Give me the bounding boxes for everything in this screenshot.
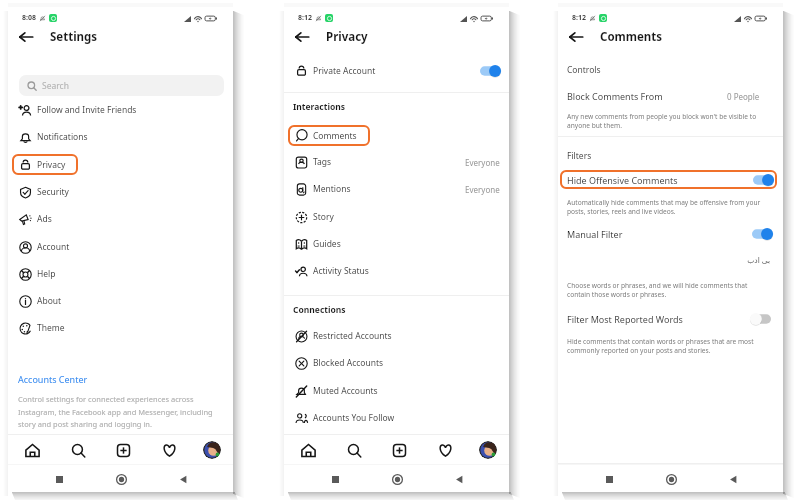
- staticText: Filter Most Reported Words: [567, 313, 683, 325]
- staticText: Account: [37, 241, 70, 253]
- staticText: Block Comments From: [567, 90, 663, 102]
- staticText: Private Account: [313, 65, 376, 77]
- button[interactable]: Create: [112, 439, 134, 461]
- button[interactable]: Blocked Accounts: [284, 352, 509, 374]
- button[interactable]: Search: [19, 75, 224, 96]
- button[interactable]: Account: [8, 236, 233, 258]
- button[interactable]: Hide Offensive Comments: [560, 170, 777, 189]
- staticText: Ads: [37, 213, 52, 225]
- button[interactable]: Back: [428, 468, 490, 490]
- button[interactable]: Privacy: [12, 154, 78, 175]
- staticText: Connections: [293, 304, 346, 316]
- staticText: Privacy: [326, 29, 368, 45]
- staticText: Search: [42, 80, 69, 92]
- button[interactable]: Home: [640, 468, 702, 490]
- staticText: Filters: [567, 150, 592, 162]
- staticText: Accounts You Follow: [313, 412, 395, 424]
- button[interactable]: Toggle: [753, 174, 772, 186]
- button[interactable]: Muted Accounts: [284, 380, 509, 402]
- staticText: Everyone: [465, 184, 500, 195]
- button[interactable]: Follow and Invite Friends: [8, 99, 233, 121]
- button[interactable]: Mentions: [284, 178, 509, 200]
- staticText: بی ادب: [558, 255, 770, 265]
- staticText: 8:12: [572, 13, 586, 23]
- button[interactable]: Block Comments From: [558, 87, 783, 105]
- staticText: Choose words or phrases, and we will hid…: [567, 281, 772, 299]
- staticText: 8:08: [22, 13, 36, 23]
- staticText: Muted Accounts: [313, 385, 378, 397]
- staticText: Settings: [50, 29, 98, 45]
- staticText: About: [37, 295, 62, 307]
- staticText: Everyone: [465, 157, 500, 168]
- staticText: Comments: [313, 130, 357, 142]
- button[interactable]: Accounts You Follow: [284, 407, 509, 429]
- button[interactable]: Toggle: [480, 65, 499, 77]
- button[interactable]: Help: [8, 263, 233, 285]
- button[interactable]: Home: [21, 439, 43, 461]
- staticText: 0 People: [727, 91, 760, 102]
- button[interactable]: Create: [388, 439, 410, 461]
- staticText: Notifications: [37, 131, 88, 143]
- staticText: Blocked Accounts: [313, 357, 384, 369]
- button[interactable]: Activity: [158, 439, 180, 461]
- button[interactable]: Recents: [304, 468, 366, 490]
- staticText: Manual Filter: [567, 228, 623, 240]
- button[interactable]: Search: [67, 439, 89, 461]
- staticText: Privacy: [37, 159, 66, 171]
- staticText: 8:12: [298, 13, 312, 23]
- staticText: Restricted Accounts: [313, 330, 392, 342]
- button[interactable]: Guides: [284, 233, 509, 255]
- button[interactable]: Recents: [578, 468, 640, 490]
- button[interactable]: Activity: [434, 439, 456, 461]
- button[interactable]: Profile: [479, 441, 497, 459]
- button[interactable]: Ads: [8, 208, 233, 230]
- button[interactable]: Back: [565, 26, 587, 48]
- button[interactable]: Activity Status: [284, 260, 509, 282]
- staticText: Guides: [313, 238, 341, 250]
- button[interactable]: Private Account: [284, 57, 509, 84]
- staticText: Controls: [567, 64, 601, 76]
- button[interactable]: Notifications: [8, 126, 233, 148]
- staticText: Interactions: [293, 101, 346, 113]
- staticText: Mentions: [313, 183, 351, 195]
- button[interactable]: Profile: [203, 441, 221, 459]
- button[interactable]: Story: [284, 206, 509, 228]
- button[interactable]: Tags: [284, 151, 509, 173]
- button[interactable]: Home: [90, 468, 152, 490]
- button[interactable]: Toggle: [752, 228, 771, 240]
- button[interactable]: Back: [152, 468, 214, 490]
- staticText: Help: [37, 268, 56, 280]
- button[interactable]: Theme: [8, 317, 233, 339]
- button[interactable]: Search: [343, 439, 365, 461]
- staticText: Hide Offensive Comments: [567, 174, 678, 186]
- button[interactable]: Security: [8, 181, 233, 203]
- staticText: Control settings for connected experienc…: [18, 394, 223, 429]
- button[interactable]: Recents: [28, 468, 90, 490]
- staticText: Comments: [600, 29, 663, 45]
- staticText: Any new comments from people you block w…: [567, 112, 767, 130]
- staticText: Follow and Invite Friends: [37, 104, 137, 116]
- staticText: Activity Status: [313, 265, 369, 277]
- button[interactable]: Home: [366, 468, 428, 490]
- button[interactable]: Back: [15, 26, 37, 48]
- staticText: Theme: [37, 322, 65, 334]
- staticText: Automatically hide comments that may be …: [567, 198, 772, 216]
- button[interactable]: About: [8, 290, 233, 312]
- button[interactable]: Accounts Center: [18, 373, 88, 385]
- button[interactable]: Toggle: [752, 313, 771, 325]
- button[interactable]: Restricted Accounts: [284, 325, 509, 347]
- button[interactable]: Filter Most Reported Words: [558, 310, 783, 327]
- button[interactable]: Home: [297, 439, 319, 461]
- button[interactable]: Back: [291, 26, 313, 48]
- staticText: Tags: [313, 156, 332, 168]
- staticText: Hide comments that contain words or phra…: [567, 337, 772, 355]
- staticText: Story: [313, 211, 334, 223]
- button[interactable]: Back: [702, 468, 764, 490]
- button[interactable]: Manual Filter: [558, 225, 783, 242]
- staticText: Security: [37, 186, 69, 198]
- button[interactable]: Comments: [288, 125, 370, 146]
